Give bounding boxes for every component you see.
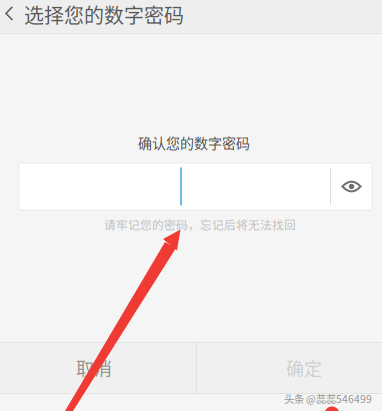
staticText: 取消 <box>76 355 112 381</box>
staticText: 选择您的数字密码 <box>24 0 184 29</box>
button[interactable]: 确定 <box>197 343 382 393</box>
staticText: 确定 <box>286 355 322 381</box>
staticText: 请牢记您的密码，忘记后将无法找回 <box>104 216 296 233</box>
button[interactable]: 选择您的数字密码 <box>24 0 184 33</box>
button[interactable]: Back <box>0 0 24 33</box>
staticText: 确认您的数字密码 <box>138 132 250 153</box>
staticText: 头条 @蕊蕊546499 <box>284 391 372 406</box>
button[interactable]: 取消 <box>0 343 196 393</box>
button[interactable]: Show password <box>331 163 372 210</box>
